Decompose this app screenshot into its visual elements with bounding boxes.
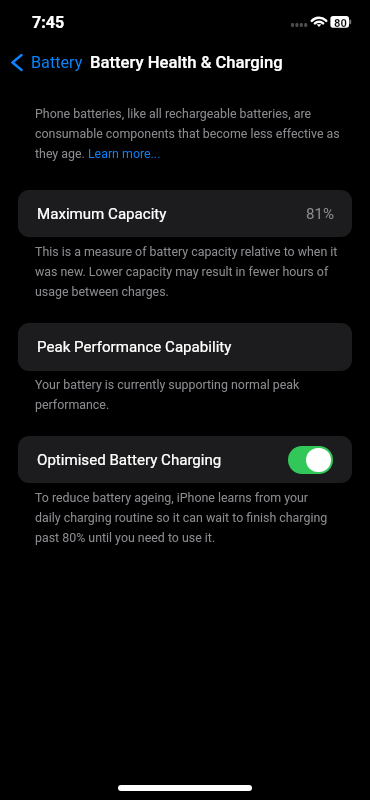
staticText: Peak Performance Capability [37,338,232,356]
button[interactable]: Maximum Capacity [18,190,352,237]
staticText: Maximum Capacity [37,205,167,223]
staticText: Your battery is currently supporting nor… [35,377,325,412]
staticText: Phone batteries, like all rechargeable b… [35,106,342,161]
button[interactable]: Optimised Battery Charging [18,436,352,483]
staticText: 80 [334,17,347,29]
staticText: To reduce battery ageing, iPhone learns … [35,490,331,545]
staticText: 81% [306,205,335,223]
button[interactable]: Optimised Battery Charging toggle [288,446,333,474]
staticText: This is a measure of battery capacity re… [35,244,342,299]
button[interactable]: Battery [11,53,83,72]
staticText: Battery [31,53,83,72]
staticText: Battery Health & Charging [90,53,283,73]
staticText: Optimised Battery Charging [37,451,222,469]
staticText: 7:45 [32,13,65,32]
button[interactable]: Peak Performance Capability [18,323,352,371]
